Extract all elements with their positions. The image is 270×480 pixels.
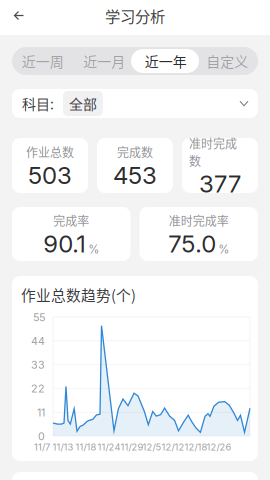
staticText: 12/18 — [184, 441, 207, 453]
staticText: 453 — [113, 161, 157, 190]
staticText: 22 — [31, 382, 45, 395]
staticText: % — [218, 242, 229, 256]
staticText: 12/5 — [142, 441, 161, 453]
staticText: % — [88, 242, 99, 256]
staticText: 11/24 — [97, 441, 120, 453]
staticText: 377 — [199, 169, 241, 198]
button[interactable]: 科目: — [12, 89, 258, 118]
staticText: 0 — [38, 430, 45, 443]
staticText: 90.1 — [43, 229, 86, 258]
staticText: 完成率 — [53, 212, 89, 229]
button[interactable]: 近一年 — [135, 47, 196, 75]
staticText: 12/12 — [161, 441, 184, 453]
button[interactable]: 近一月 — [73, 47, 135, 75]
staticText: 33 — [31, 358, 45, 371]
staticText: 503 — [28, 161, 72, 190]
staticText: 55 — [33, 311, 45, 324]
staticText: 准时完成率 — [169, 212, 229, 229]
staticText: 11/13 — [52, 441, 73, 453]
staticText: 学习分析 — [105, 4, 165, 27]
staticText: 近一年 — [145, 51, 187, 71]
staticText: 11/18 — [75, 441, 96, 453]
staticText: 全部 — [69, 93, 97, 114]
staticText: 11/29 — [120, 441, 143, 453]
staticText: 作业总数趋势(个) — [21, 284, 136, 305]
button[interactable]: 近一周 — [12, 47, 73, 75]
button[interactable]: Back — [0, 0, 38, 35]
staticText: 44 — [31, 335, 45, 347]
staticText: 11/7 — [34, 441, 50, 453]
staticText: 准时完成 数 — [189, 135, 237, 169]
staticText: 科目: — [22, 93, 54, 114]
staticText: 近一周 — [22, 51, 64, 71]
staticText: 作业总数 — [26, 143, 74, 161]
staticText: 近一月 — [83, 51, 125, 71]
staticText: 11 — [37, 406, 45, 419]
staticText: 12/26 — [206, 441, 231, 453]
button[interactable]: 自定义 — [196, 47, 258, 75]
staticText: 完成数 — [117, 143, 153, 161]
staticText: 75.0 — [168, 229, 216, 258]
staticText: 自定义 — [206, 51, 248, 71]
